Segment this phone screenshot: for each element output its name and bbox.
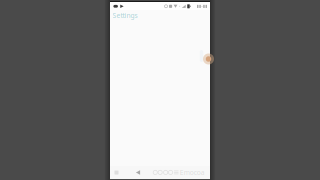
button[interactable]: Back <box>128 166 148 179</box>
staticText: Emocoa <box>180 168 205 177</box>
button[interactable]: Recent apps <box>106 166 126 179</box>
staticText: Settings <box>112 11 137 20</box>
button[interactable]: Home <box>151 166 207 179</box>
